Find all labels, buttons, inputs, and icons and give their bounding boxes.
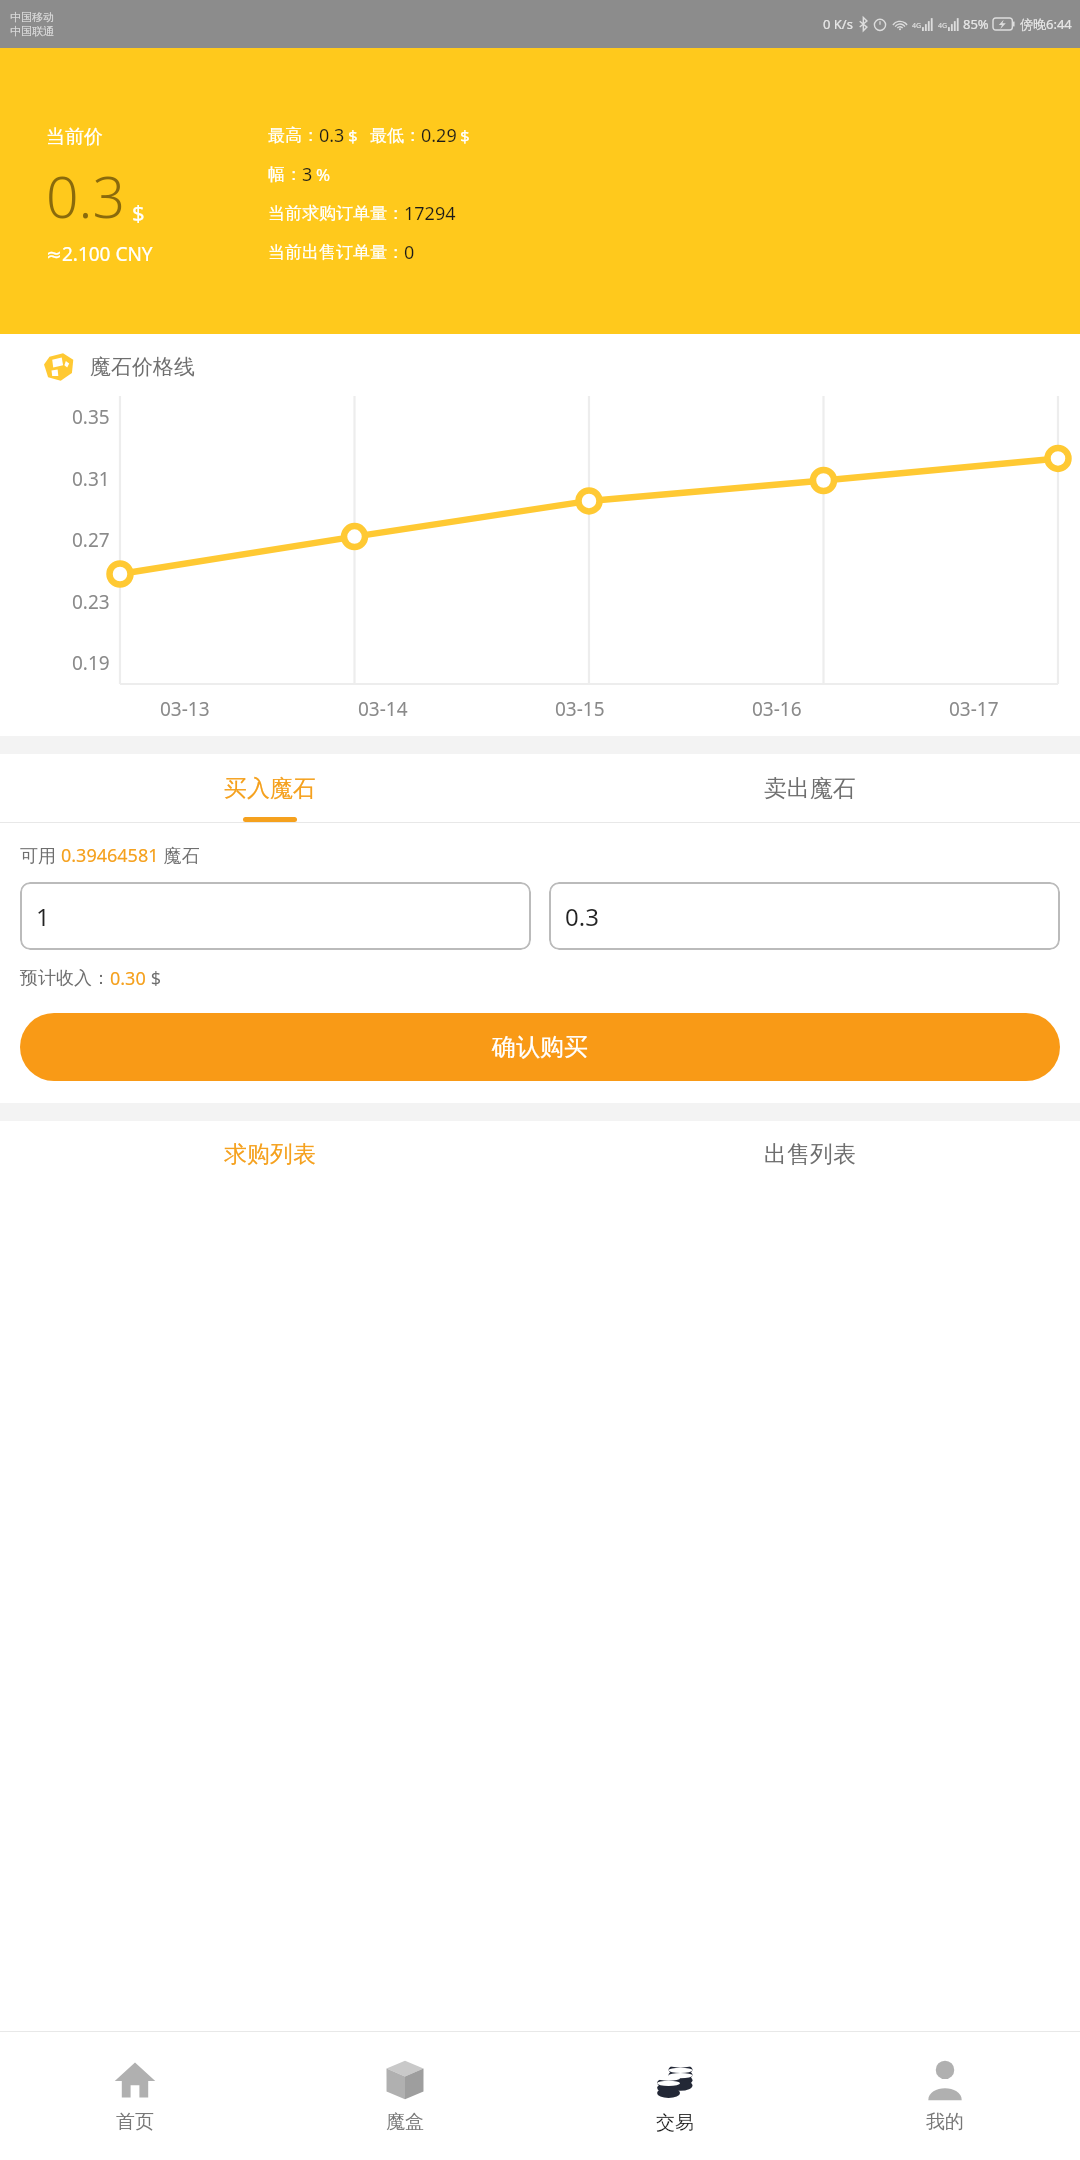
staticText: 预计收入： (20, 967, 110, 990)
button[interactable]: 买入魔石 (0, 754, 540, 822)
staticText: 当前出售订单量： (268, 242, 404, 263)
staticText: 03-15 (555, 696, 605, 722)
staticText: 魔盒 (386, 2110, 424, 2134)
staticText: 魔石价格线 (90, 354, 195, 380)
staticText: 0.19 (72, 650, 110, 676)
staticText: 0.23 (72, 589, 110, 615)
staticText: 买入魔石 (224, 774, 316, 803)
staticText: 中国移动 (10, 10, 54, 24)
staticText: 03-17 (949, 696, 999, 722)
button[interactable]: 出售列表 (540, 1121, 1080, 1187)
staticText: ≈2.100 CNY (46, 241, 153, 267)
staticText: 傍晚6:44 (1020, 15, 1072, 33)
button[interactable]: 交易 (540, 2032, 810, 2160)
staticText: 85% (963, 15, 989, 33)
staticText: 4G (938, 21, 948, 31)
staticText: 最低： (370, 125, 421, 146)
staticText: $ (146, 966, 161, 991)
staticText: 0.31 (72, 466, 110, 492)
staticText: 我的 (926, 2110, 964, 2134)
staticText: 0.3 (319, 123, 345, 148)
staticText: 可用 (20, 843, 61, 868)
button[interactable]: 首页 (0, 2032, 270, 2160)
staticText: 0.35 (72, 404, 110, 430)
staticText: 最高： (268, 125, 319, 146)
button[interactable]: 求购列表 (0, 1121, 540, 1187)
button[interactable]: 1 (20, 882, 531, 950)
staticText: $ (132, 197, 145, 227)
button[interactable]: 我的 (810, 2032, 1080, 2160)
button[interactable]: 魔盒 (270, 2032, 540, 2160)
staticText: 中国联通 (10, 24, 54, 38)
staticText: 求购列表 (224, 1140, 316, 1169)
staticText: 0.3 (565, 900, 599, 933)
staticText: 0 (404, 240, 415, 265)
staticText: 3 (302, 162, 313, 187)
staticText: % (316, 163, 331, 186)
staticText: $ (348, 124, 358, 147)
staticText: 出售列表 (764, 1140, 856, 1169)
staticText: 0.29 (421, 123, 457, 148)
button[interactable]: 卖出魔石 (540, 754, 1080, 822)
staticText: 0 K/s (823, 15, 853, 33)
staticText: 幅： (268, 164, 302, 185)
staticText: $ (460, 124, 470, 147)
staticText: 1 (36, 900, 50, 933)
staticText: 03-16 (752, 696, 802, 722)
staticText: 0.3 (46, 157, 126, 235)
staticText: 确认购买 (492, 1032, 588, 1062)
staticText: 卖出魔石 (764, 774, 856, 803)
button[interactable]: 确认购买 (20, 1013, 1060, 1081)
button[interactable]: 0.3 (549, 882, 1060, 950)
staticText: 魔石 (159, 843, 200, 868)
staticText: 17294 (404, 201, 456, 226)
staticText: 当前价 (46, 125, 103, 149)
staticText: 0.39464581 (61, 843, 159, 868)
staticText: 0.30 (110, 966, 146, 991)
staticText: 03-13 (160, 696, 210, 722)
staticText: 当前求购订单量： (268, 203, 404, 224)
staticText: 03-14 (358, 696, 408, 722)
staticText: 首页 (116, 2110, 154, 2134)
staticText: 4G (912, 21, 922, 31)
staticText: 交易 (656, 2111, 694, 2135)
staticText: 0.27 (72, 527, 110, 553)
